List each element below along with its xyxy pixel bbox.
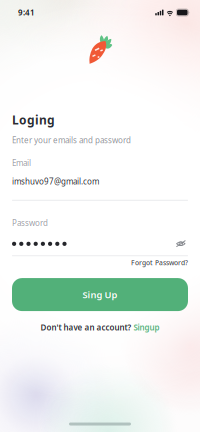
button[interactable]: Forgot Password? — [131, 256, 188, 269]
staticText: Singup — [133, 322, 159, 333]
staticText: Enter your emails and password — [12, 135, 131, 145]
staticText: imshuvo97@gmail.com — [12, 176, 99, 187]
staticText: Loging — [12, 112, 55, 128]
staticText: 9:41 — [18, 7, 35, 18]
staticText: Password — [12, 218, 48, 228]
button[interactable]: Singup — [133, 322, 159, 333]
staticText: Sing Up — [82, 288, 117, 301]
button[interactable]: Sing Up — [12, 278, 188, 311]
staticText: Don't have an account? — [40, 322, 133, 333]
button[interactable]: Show password — [174, 238, 188, 249]
staticText: Email — [12, 158, 31, 168]
staticText: Forgot Password? — [131, 258, 188, 267]
